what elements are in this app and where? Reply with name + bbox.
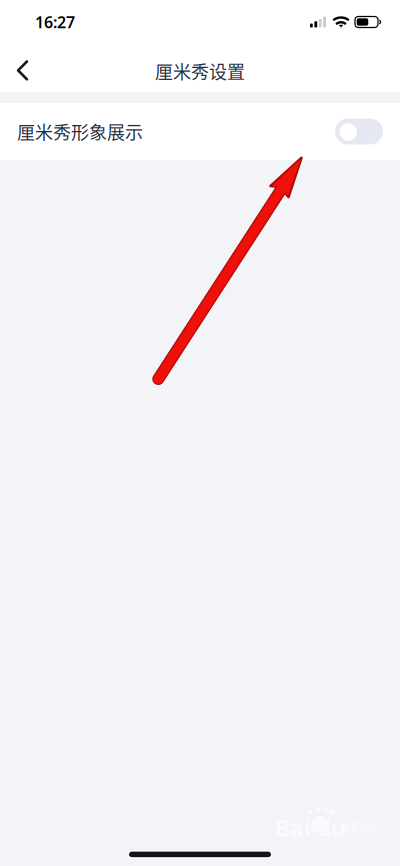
staticText: 厘米秀形象展示 xyxy=(17,118,143,145)
button[interactable]: 厘米秀形象展示 xyxy=(0,103,400,160)
staticText: 厘米秀设置 xyxy=(155,58,245,84)
button[interactable]: 返回 xyxy=(0,44,46,92)
staticText: 16:27 xyxy=(35,11,75,33)
